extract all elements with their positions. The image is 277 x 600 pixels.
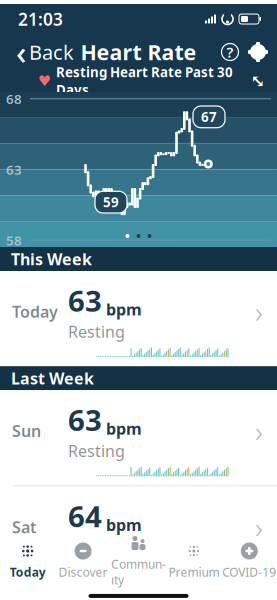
- staticText: bpm: [106, 299, 142, 320]
- staticText: Premium: [168, 564, 219, 580]
- staticText: Resting Heart Rate Past 30 Days: [56, 63, 233, 99]
- staticText: Last Week: [11, 368, 94, 389]
- staticText: 21:03: [18, 7, 63, 30]
- staticText: ?: [226, 42, 233, 62]
- staticText: Back: [29, 39, 74, 65]
- button[interactable]: Community: [111, 527, 166, 594]
- staticText: Discover: [59, 564, 108, 580]
- button[interactable]: Fri: [0, 583, 277, 600]
- staticText: Today: [10, 564, 46, 580]
- staticText: ›: [255, 507, 263, 546]
- staticText: 63: [68, 281, 102, 320]
- button[interactable]: Sat: [0, 486, 277, 582]
- staticText: ›: [255, 292, 263, 331]
- staticText: 59: [103, 193, 119, 211]
- staticText: Resting: [68, 536, 125, 558]
- staticText: ‹: [16, 31, 26, 73]
- button[interactable]: ‹: [6, 34, 84, 70]
- staticText: Community: [111, 556, 166, 588]
- button[interactable]: Settings: [245, 35, 271, 69]
- button[interactable]: Expand chart: [245, 70, 271, 92]
- staticText: COVID-19: [222, 564, 276, 580]
- staticText: Sat: [12, 516, 36, 538]
- staticText: bpm: [106, 514, 142, 535]
- staticText: 58: [6, 231, 22, 249]
- staticText: bpm: [106, 418, 142, 439]
- staticText: 65: [68, 593, 102, 600]
- staticText: 68: [6, 90, 22, 108]
- staticText: Sun: [12, 420, 41, 441]
- button[interactable]: Help: [215, 35, 245, 69]
- button[interactable]: Today: [0, 535, 55, 586]
- staticText: ⤡: [250, 71, 265, 91]
- staticText: Resting: [68, 321, 125, 342]
- staticText: 63: [6, 161, 22, 178]
- staticText: 64: [68, 496, 102, 535]
- button[interactable]: Discover: [55, 535, 111, 586]
- button[interactable]: Sun: [0, 390, 277, 485]
- staticText: Heart Rate: [80, 38, 196, 66]
- staticText: ♥: [38, 73, 51, 89]
- staticText: Resting: [68, 440, 125, 461]
- button[interactable]: COVID-19: [222, 535, 277, 586]
- staticText: Today: [12, 301, 58, 322]
- staticText: 63: [68, 400, 102, 439]
- staticText: This Week: [11, 248, 92, 270]
- staticText: 67: [201, 108, 217, 126]
- staticText: ›: [255, 411, 263, 450]
- button[interactable]: Premium: [166, 535, 222, 586]
- button[interactable]: Today: [0, 271, 277, 366]
